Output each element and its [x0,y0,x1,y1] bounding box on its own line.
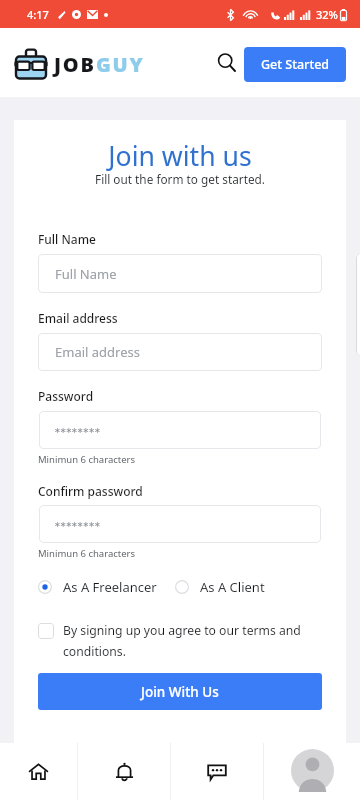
staticText: Email address [38,310,118,326]
button[interactable]: ∗∗∗∗∗∗∗∗ [39,505,321,543]
button[interactable]: ∗∗∗∗∗∗∗∗ [39,411,321,449]
staticText: Fill out the form to get started. [14,171,346,187]
staticText: Full Name [38,231,96,247]
button[interactable]: Profile [264,743,360,800]
staticText: By signing up you agree to our terms and… [63,622,322,660]
staticText: 32% [316,7,338,22]
staticText: Minimun 6 characters [38,547,136,560]
staticText: Full Name [55,265,117,283]
staticText: Join With Us [141,683,219,701]
staticText: 4:17 [27,7,49,22]
staticText: GUY [96,51,145,78]
button[interactable]: Messages [171,743,263,800]
button[interactable]: Get Started [244,47,346,82]
button[interactable]: As A Client [175,578,265,596]
staticText: Password [38,388,94,404]
staticText: Minimun 6 characters [38,453,136,466]
button[interactable]: By signing up you agree to our terms and… [38,622,322,660]
staticText: Confirm password [38,483,143,499]
button[interactable]: Join With Us [38,673,322,710]
staticText: Get Started [261,56,330,73]
staticText: ∗∗∗∗∗∗∗∗ [54,426,100,435]
staticText: ∗∗∗∗∗∗∗∗ [54,520,100,529]
button[interactable]: Email address [38,333,322,371]
staticText: As A Freelancer [63,578,157,596]
staticText: As A Client [200,578,265,596]
staticText: Join with us [14,138,346,174]
button[interactable]: Full Name [38,254,322,293]
button[interactable]: Notifications [78,743,170,800]
button[interactable]: Home [0,743,77,800]
staticText: Email address [55,343,140,361]
button[interactable]: As A Freelancer [38,578,157,596]
button[interactable]: Search [208,44,246,82]
staticText: JOB [54,51,96,78]
